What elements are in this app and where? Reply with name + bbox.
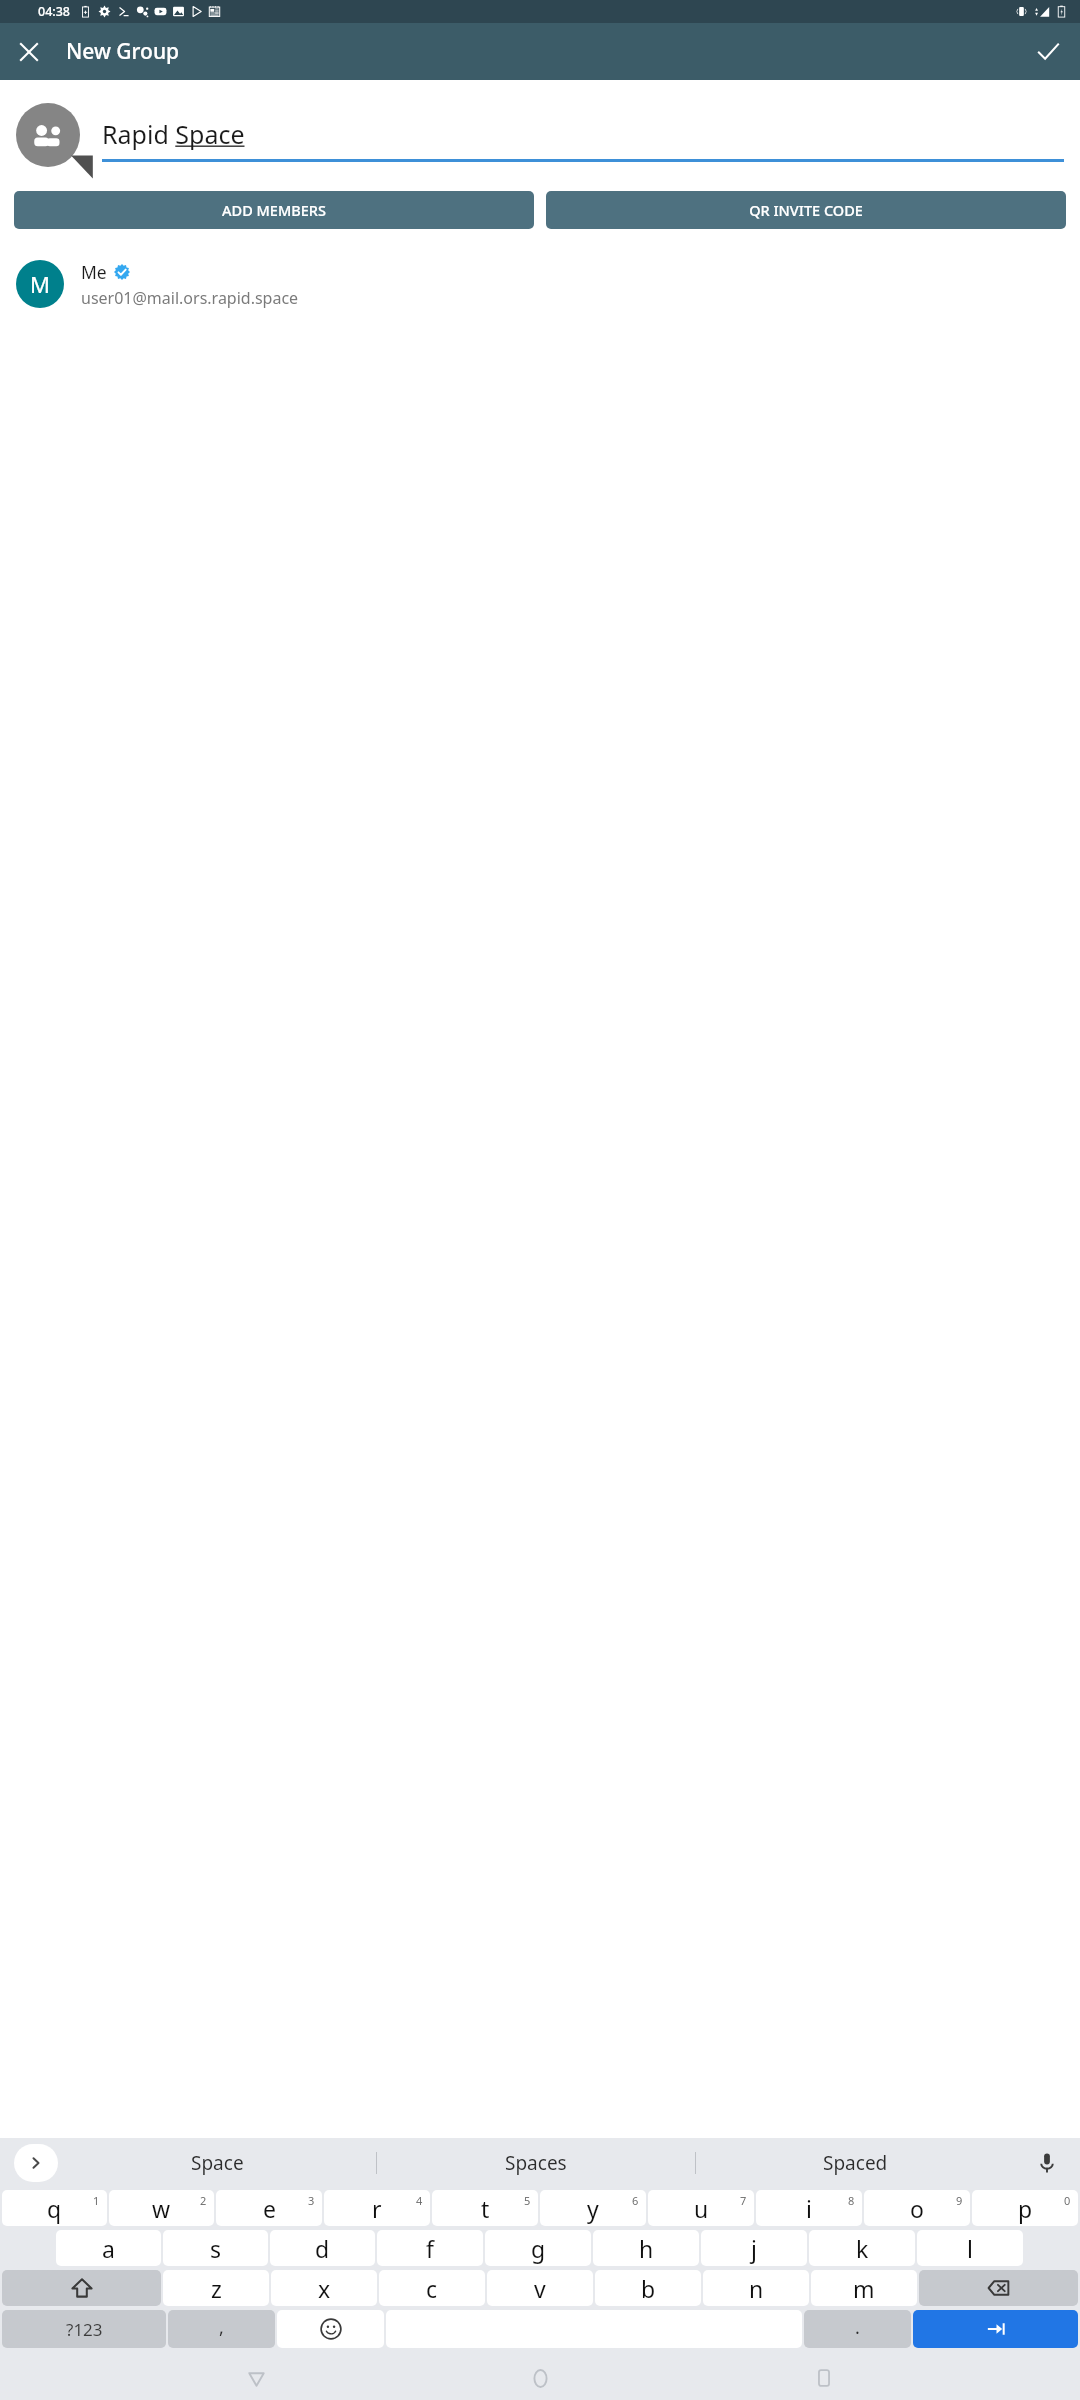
staticText: u (694, 2193, 709, 2224)
button[interactable]: i (756, 2190, 862, 2226)
button[interactable]: Group photo (16, 103, 80, 167)
button[interactable]: g (485, 2230, 591, 2266)
staticText: w (152, 2193, 171, 2224)
staticText: 9 (956, 2193, 963, 2208)
staticText: 3 (308, 2193, 315, 2208)
staticText: p (1018, 2193, 1033, 2224)
staticText: Me (81, 260, 107, 284)
staticText: 5 (524, 2193, 531, 2208)
button[interactable]: , (168, 2310, 275, 2348)
button[interactable]: Backspace (919, 2270, 1078, 2306)
staticText: b (641, 2273, 656, 2304)
staticText: 2 (200, 2193, 207, 2208)
staticText: y (587, 2193, 599, 2224)
staticText: 6 (632, 2193, 639, 2208)
staticText: f (426, 2233, 434, 2264)
button[interactable]: d (270, 2230, 375, 2266)
button[interactable]: t (432, 2190, 538, 2226)
staticText: l (967, 2233, 973, 2264)
staticText: user01@mail.ors.rapid.space (81, 287, 299, 309)
staticText: Spaces (505, 2150, 567, 2176)
button[interactable]: o (864, 2190, 970, 2226)
button[interactable]: z (163, 2270, 269, 2306)
button[interactable]: l (917, 2230, 1023, 2266)
button[interactable]: e (216, 2190, 322, 2226)
button[interactable]: ADD MEMBERS (14, 191, 534, 229)
button[interactable]: b (595, 2270, 701, 2306)
button[interactable]: Close (5, 28, 53, 76)
button[interactable]: Spaces (377, 2138, 695, 2188)
staticText: z (211, 2273, 222, 2304)
staticText: Spaced (823, 2150, 888, 2176)
button[interactable]: Home (512, 2356, 568, 2400)
staticText: 0 (1064, 2193, 1071, 2208)
staticText: n (749, 2273, 764, 2304)
staticText: ADD MEMBERS (222, 200, 326, 220)
staticText: M (30, 269, 50, 299)
staticText: q (47, 2193, 62, 2224)
staticText: r (372, 2193, 382, 2224)
button[interactable]: x (271, 2270, 377, 2306)
button[interactable]: Recent apps (796, 2356, 852, 2400)
button[interactable]: p (972, 2190, 1078, 2226)
button[interactable]: u (648, 2190, 754, 2226)
staticText: x (318, 2273, 331, 2304)
staticText: 7 (740, 2193, 747, 2208)
staticText: New Group (66, 37, 180, 66)
button[interactable]: y (540, 2190, 646, 2226)
staticText: 04:38 (38, 3, 71, 20)
button[interactable]: . (804, 2310, 911, 2348)
button[interactable]: k (809, 2230, 915, 2266)
button[interactable]: Next (913, 2310, 1078, 2348)
staticText: a (102, 2233, 115, 2264)
staticText: . (855, 2315, 860, 2340)
staticText: QR INVITE CODE (749, 200, 863, 220)
staticText: 1 (93, 2193, 100, 2208)
staticText: g (531, 2233, 546, 2264)
button[interactable]: m (811, 2270, 917, 2306)
button[interactable]: c (379, 2270, 485, 2306)
staticText: i (806, 2193, 812, 2224)
button[interactable]: Back (228, 2356, 284, 2400)
button[interactable]: v (487, 2270, 593, 2306)
button[interactable]: n (703, 2270, 809, 2306)
button[interactable]: Voice input (1014, 2138, 1080, 2188)
staticText: , (219, 2315, 224, 2340)
button[interactable]: Space (58, 2138, 376, 2188)
button[interactable]: q (2, 2190, 107, 2226)
button[interactable]: More suggestions (14, 2144, 58, 2182)
button[interactable]: h (593, 2230, 699, 2266)
staticText: d (315, 2233, 330, 2264)
staticText: t (481, 2193, 490, 2224)
staticText: h (639, 2233, 654, 2264)
button[interactable]: s (163, 2230, 268, 2266)
staticText: Rapid Space (102, 117, 245, 151)
button[interactable]: Confirm (1024, 28, 1072, 76)
staticText: v (534, 2273, 546, 2304)
button[interactable]: j (701, 2230, 807, 2266)
staticText: ?123 (66, 2318, 103, 2341)
staticText: o (910, 2193, 924, 2224)
button[interactable]: ?123 (2, 2310, 166, 2348)
staticText: j (751, 2233, 757, 2264)
button[interactable]: Shift (2, 2270, 161, 2306)
staticText: m (853, 2273, 875, 2304)
button[interactable]: QR INVITE CODE (546, 191, 1066, 229)
button[interactable]: f (377, 2230, 483, 2266)
button[interactable]: r (324, 2190, 430, 2226)
button[interactable]: Emoji (277, 2310, 384, 2348)
staticText: k (856, 2233, 869, 2264)
staticText: 4 (416, 2193, 423, 2208)
staticText: s (210, 2233, 222, 2264)
staticText: c (426, 2273, 438, 2304)
staticText: 8 (848, 2193, 855, 2208)
staticText: e (263, 2193, 276, 2224)
button[interactable]: M (0, 254, 1080, 314)
button[interactable]: a (56, 2230, 161, 2266)
button[interactable]: w (109, 2190, 214, 2226)
button[interactable]: Spaced (696, 2138, 1014, 2188)
staticText: Space (191, 2150, 244, 2176)
